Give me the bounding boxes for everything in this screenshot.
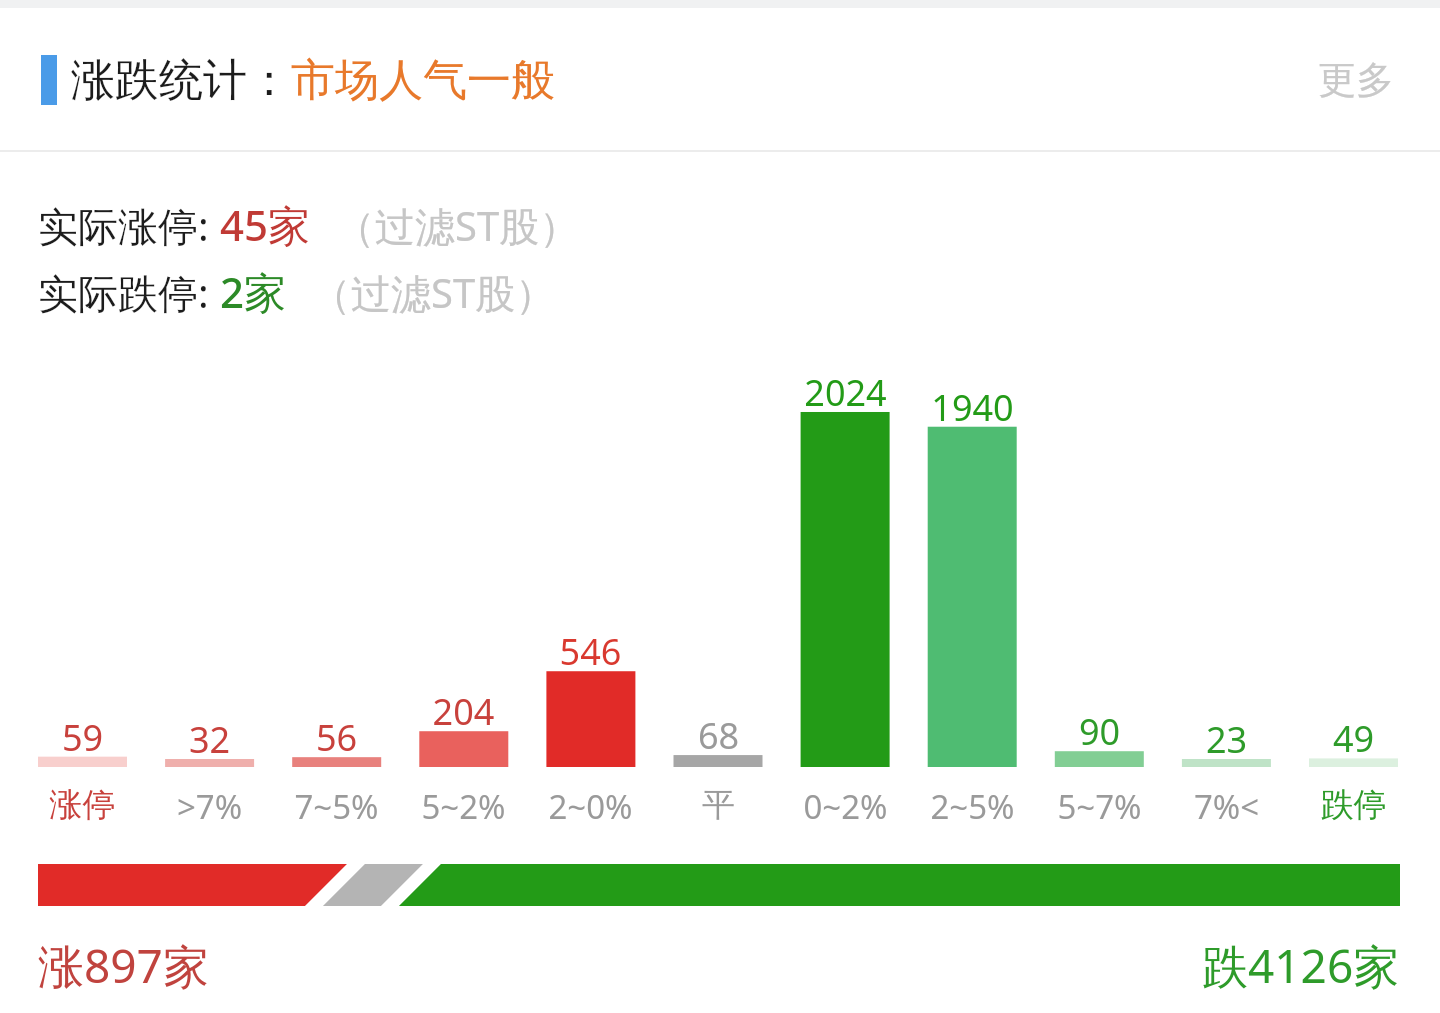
staticText: 90 [1055, 707, 1144, 756]
button[interactable]: 23 [1182, 715, 1271, 764]
button[interactable]: 更多 [1312, 46, 1400, 114]
button[interactable]: 跌4126家 [1202, 934, 1400, 997]
staticText: 5~2% [411, 784, 516, 829]
button[interactable]: 1940 [928, 383, 1017, 432]
staticText: 204 [419, 687, 508, 736]
staticText: 更多 [1318, 56, 1394, 104]
button[interactable]: 204 [419, 687, 508, 736]
button[interactable]: 实际跌停: [38, 263, 556, 320]
staticText: 2家 [220, 263, 287, 320]
button[interactable]: 2024 [801, 368, 890, 417]
button[interactable]: 32 [165, 715, 254, 764]
staticText: 市场人气一般 [291, 53, 555, 108]
staticText: 5~7% [1047, 784, 1152, 829]
button[interactable]: 68 [674, 711, 763, 760]
staticText: 68 [674, 711, 763, 760]
staticText: 1940 [928, 383, 1017, 432]
staticText: 2~5% [920, 784, 1025, 829]
staticText: >7% [157, 784, 262, 829]
staticText: 涨停 [30, 784, 135, 826]
staticText: 跌4126家 [1202, 934, 1400, 997]
button[interactable]: 涨跌统计： [0, 8, 1440, 152]
staticText: 7~5% [284, 784, 389, 829]
staticText: 实际跌停: [38, 265, 220, 320]
button[interactable]: 涨跌家数比例 [38, 864, 1400, 906]
staticText: 49 [1309, 714, 1398, 763]
staticText: 56 [292, 713, 381, 762]
staticText: 23 [1182, 715, 1271, 764]
button[interactable]: 49 [1309, 714, 1398, 763]
staticText: 2024 [801, 368, 890, 417]
staticText: 涨跌统计： [71, 53, 291, 108]
staticText: 2~0% [538, 784, 643, 829]
staticText: 涨897家 [38, 934, 209, 997]
staticText: 跌停 [1301, 784, 1406, 826]
staticText: （过滤ST股） [311, 265, 556, 320]
staticText: （过滤ST股） [335, 198, 580, 253]
staticText: 平 [666, 784, 771, 826]
button[interactable]: 59 [38, 713, 127, 762]
button[interactable]: 546 [546, 627, 635, 676]
staticText: 实际涨停: [38, 198, 220, 253]
staticText: 546 [546, 627, 635, 676]
button[interactable]: 56 [292, 713, 381, 762]
staticText: 32 [165, 715, 254, 764]
button[interactable]: 涨897家 [38, 934, 209, 997]
staticText: 45家 [220, 196, 311, 253]
button[interactable]: 90 [1055, 707, 1144, 756]
staticText: 59 [38, 713, 127, 762]
staticText: 7%< [1174, 784, 1279, 829]
button[interactable]: 实际涨停: [38, 196, 580, 253]
staticText: 0~2% [793, 784, 898, 829]
